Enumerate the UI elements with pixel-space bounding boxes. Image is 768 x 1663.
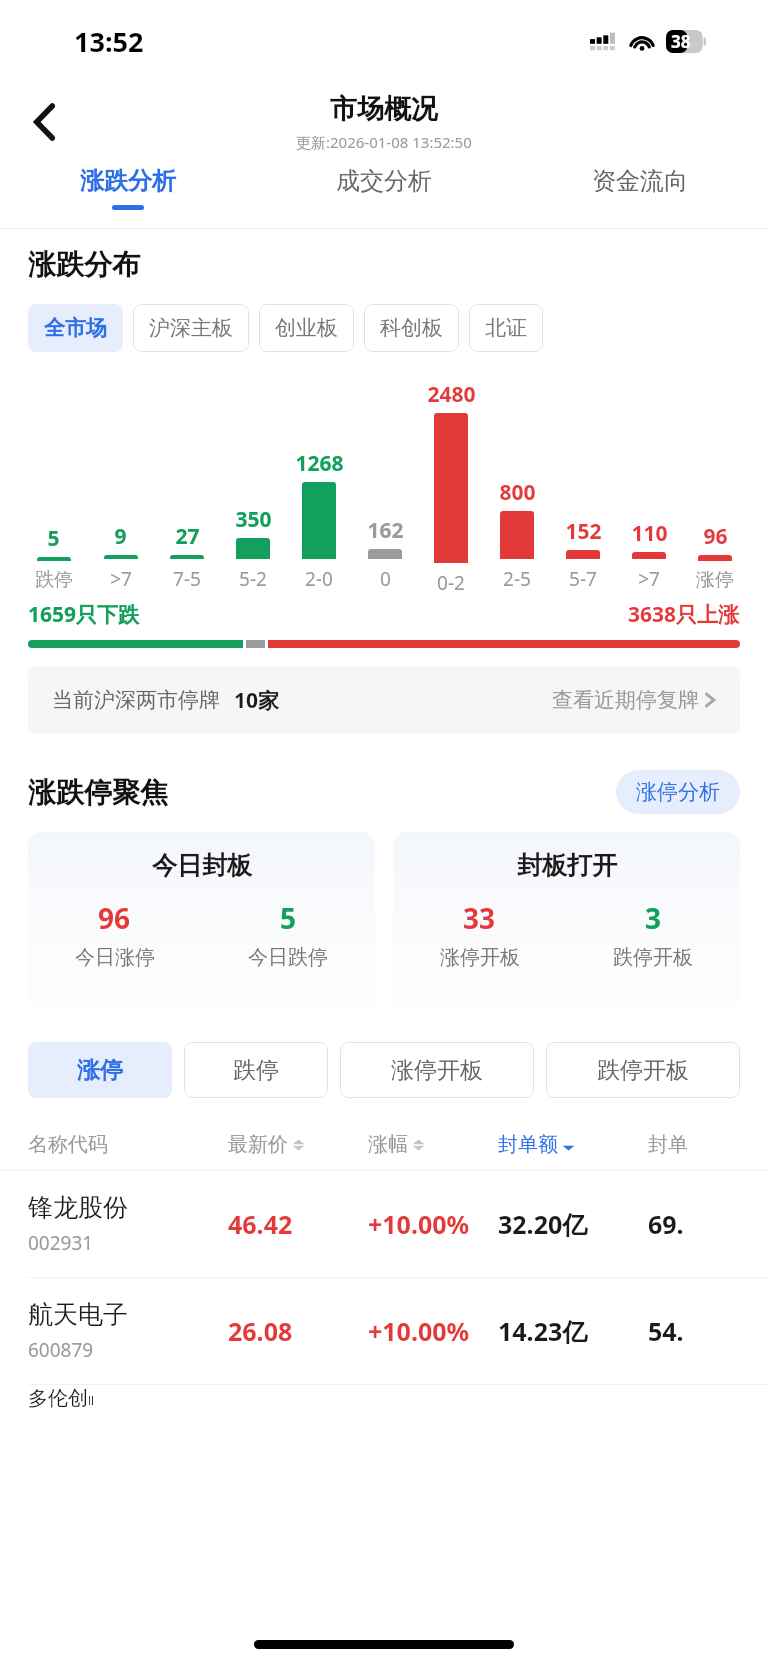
staticText: 5 <box>47 524 60 553</box>
staticText: 14.23亿 <box>498 1314 588 1348</box>
button[interactable]: 跌停 <box>184 1042 328 1098</box>
button[interactable]: 沪深主板 <box>133 304 249 352</box>
button[interactable]: 涨停 <box>28 1042 172 1098</box>
staticText: 5-2 <box>239 566 267 592</box>
button[interactable]: 涨停分析 <box>616 770 740 814</box>
staticText: 350 <box>235 505 272 534</box>
staticText: 7-5 <box>173 566 201 592</box>
staticText: 封单 <box>648 1132 688 1157</box>
button[interactable]: 封单额 <box>498 1132 648 1157</box>
staticText: 资金流向 <box>592 166 688 196</box>
button[interactable]: 涨跌分析 <box>0 166 256 228</box>
staticText: 13:52 <box>74 23 144 60</box>
staticText: 涨跌停聚焦 <box>28 775 168 810</box>
staticText: 今日封板 <box>152 850 252 881</box>
staticText: 2480 <box>427 380 476 409</box>
staticText: 创业板 <box>275 315 338 341</box>
staticText: 北证 <box>485 315 527 341</box>
staticText: 1268 <box>295 449 344 478</box>
staticText: 54. <box>648 1314 684 1348</box>
button[interactable]: Back <box>14 91 76 153</box>
button[interactable]: 航天电子 <box>0 1278 768 1384</box>
button[interactable]: 锋龙股份 <box>0 1171 768 1277</box>
staticText: 跌停 <box>35 568 73 592</box>
staticText: 33 <box>463 899 496 937</box>
button[interactable]: 成交分析 <box>256 166 512 228</box>
staticText: 0-2 <box>437 570 465 592</box>
staticText: 162 <box>367 516 404 545</box>
staticText: 800 <box>499 478 536 507</box>
staticText: 涨跌分析 <box>80 166 176 196</box>
staticText: 今日跌停 <box>248 945 328 970</box>
staticText: 今日涨停 <box>75 945 155 970</box>
staticText: 96 <box>98 899 131 937</box>
staticText: 0 <box>380 566 391 592</box>
button[interactable]: 创业板 <box>259 304 354 352</box>
button[interactable]: 涨停开板 <box>340 1042 534 1098</box>
staticText: 152 <box>565 517 602 546</box>
staticText: 封板打开 <box>517 850 617 881</box>
staticText: >7 <box>110 566 132 592</box>
button[interactable]: 全市场 <box>28 304 123 352</box>
staticText: 002931 <box>28 1230 94 1256</box>
staticText: 涨停 <box>77 1056 123 1085</box>
button[interactable]: 今日封板 <box>28 832 375 1010</box>
staticText: 市场概况 <box>330 92 438 126</box>
staticText: 航天电子 <box>28 1299 128 1330</box>
staticText: 科创板 <box>380 315 443 341</box>
staticText: 46.42 <box>228 1207 293 1241</box>
staticText: >7 <box>638 566 660 592</box>
staticText: 9 <box>114 522 127 551</box>
button[interactable]: 封板打开 <box>393 832 740 1010</box>
staticText: 2-0 <box>305 566 333 592</box>
staticText: 跌停开板 <box>597 1056 689 1085</box>
staticText: 5 <box>280 899 297 937</box>
button[interactable]: 当前沪深两市停牌 <box>28 666 740 734</box>
staticText: 名称代码 <box>28 1132 228 1157</box>
staticText: 10家 <box>234 686 280 715</box>
staticText: 69. <box>648 1207 684 1241</box>
staticText: 涨停开板 <box>391 1056 483 1085</box>
staticText: 600879 <box>28 1337 94 1363</box>
staticText: 3 <box>645 899 662 937</box>
staticText: 成交分析 <box>336 166 432 196</box>
staticText: +10.00% <box>368 1207 470 1241</box>
button[interactable]: 资金流向 <box>512 166 768 228</box>
staticText: 110 <box>631 519 668 548</box>
staticText: 查看近期停复牌 <box>552 687 699 713</box>
staticText: 38 <box>671 30 691 53</box>
staticText: 涨停分析 <box>636 779 720 805</box>
button[interactable]: 北证 <box>469 304 543 352</box>
staticText: 26.08 <box>228 1314 293 1348</box>
staticText: 最新价 <box>228 1132 288 1157</box>
button[interactable]: 科创板 <box>364 304 459 352</box>
staticText: 1659只下跌 <box>28 600 140 629</box>
staticText: 涨幅 <box>368 1132 408 1157</box>
staticText: 涨停 <box>696 568 734 592</box>
staticText: 跌停 <box>233 1056 279 1085</box>
staticText: 锋龙股份 <box>28 1192 128 1223</box>
staticText: 96 <box>703 522 728 551</box>
staticText: 32.20亿 <box>498 1207 588 1241</box>
staticText: 涨跌分布 <box>28 247 140 282</box>
staticText: 全市场 <box>44 315 107 341</box>
staticText: 沪深主板 <box>149 315 233 341</box>
staticText: 5-7 <box>569 566 597 592</box>
staticText: 涨停开板 <box>440 945 520 970</box>
staticText: 当前沪深两市停牌 <box>52 687 220 713</box>
staticText: 跌停开板 <box>613 945 693 970</box>
button[interactable]: 跌停开板 <box>546 1042 740 1098</box>
button[interactable]: 涨幅 <box>368 1132 498 1157</box>
staticText: 封单额 <box>498 1132 558 1157</box>
staticText: 多伦创။ <box>28 1385 95 1414</box>
button[interactable]: 最新价 <box>228 1132 368 1157</box>
staticText: +10.00% <box>368 1314 470 1348</box>
staticText: 3638只上涨 <box>628 600 740 629</box>
staticText: 更新:2026-01-08 13:52:50 <box>296 132 472 152</box>
staticText: 2-5 <box>503 566 531 592</box>
staticText: 27 <box>175 522 200 551</box>
